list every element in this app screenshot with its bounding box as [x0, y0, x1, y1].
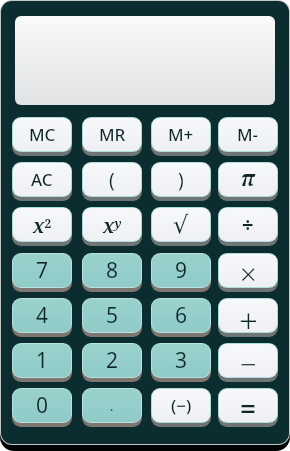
staticText: 7: [36, 256, 49, 285]
staticText: π: [241, 164, 255, 193]
staticText: 4: [36, 301, 49, 330]
button[interactable]: 1: [12, 343, 72, 378]
staticText: √: [173, 211, 189, 239]
button[interactable]: −: [218, 343, 278, 378]
staticText: =: [240, 389, 257, 422]
staticText: M+: [168, 123, 194, 146]
button[interactable]: 4: [12, 298, 72, 333]
staticText: AC: [31, 168, 53, 191]
button[interactable]: MR: [82, 117, 142, 152]
staticText: ÷: [242, 211, 254, 238]
button[interactable]: 6: [151, 298, 211, 333]
button[interactable]: M+: [151, 117, 211, 152]
staticText: +: [239, 299, 258, 331]
staticText: xy: [103, 213, 122, 239]
button[interactable]: x2: [12, 207, 72, 242]
button[interactable]: MC: [12, 117, 72, 152]
button[interactable]: 7: [12, 253, 72, 288]
staticText: .: [110, 398, 114, 414]
staticText: MR: [99, 123, 126, 146]
button[interactable]: ×: [218, 253, 278, 288]
button[interactable]: ÷: [218, 207, 278, 242]
button[interactable]: =: [218, 388, 278, 423]
button[interactable]: xy: [82, 207, 142, 242]
staticText: 3: [175, 346, 188, 375]
staticText: 5: [106, 301, 119, 330]
staticText: 6: [175, 301, 188, 330]
staticText: ): [178, 167, 184, 193]
button[interactable]: 3: [151, 343, 211, 378]
staticText: 9: [175, 256, 188, 285]
button[interactable]: (: [82, 162, 142, 197]
staticText: M-: [237, 123, 259, 146]
button[interactable]: 5: [82, 298, 142, 333]
staticText: 1: [36, 346, 49, 375]
staticText: 0: [36, 391, 49, 420]
button[interactable]: 8: [82, 253, 142, 288]
staticText: (−): [171, 394, 192, 417]
button[interactable]: +: [218, 298, 278, 333]
button[interactable]: AC: [12, 162, 72, 197]
button[interactable]: 2: [82, 343, 142, 378]
staticText: x2: [33, 213, 52, 239]
staticText: MC: [29, 123, 56, 146]
button[interactable]: √: [151, 207, 211, 242]
button[interactable]: M-: [218, 117, 278, 152]
staticText: −: [240, 344, 257, 377]
staticText: (: [109, 167, 115, 193]
staticText: 2: [106, 346, 119, 375]
staticText: ×: [240, 254, 257, 287]
staticText: 8: [106, 256, 119, 285]
button[interactable]: 0: [12, 388, 72, 423]
button[interactable]: ): [151, 162, 211, 197]
button[interactable]: π: [218, 162, 278, 197]
button[interactable]: .: [82, 388, 142, 423]
button[interactable]: [15, 16, 275, 105]
button[interactable]: (−): [151, 388, 211, 423]
button[interactable]: 9: [151, 253, 211, 288]
